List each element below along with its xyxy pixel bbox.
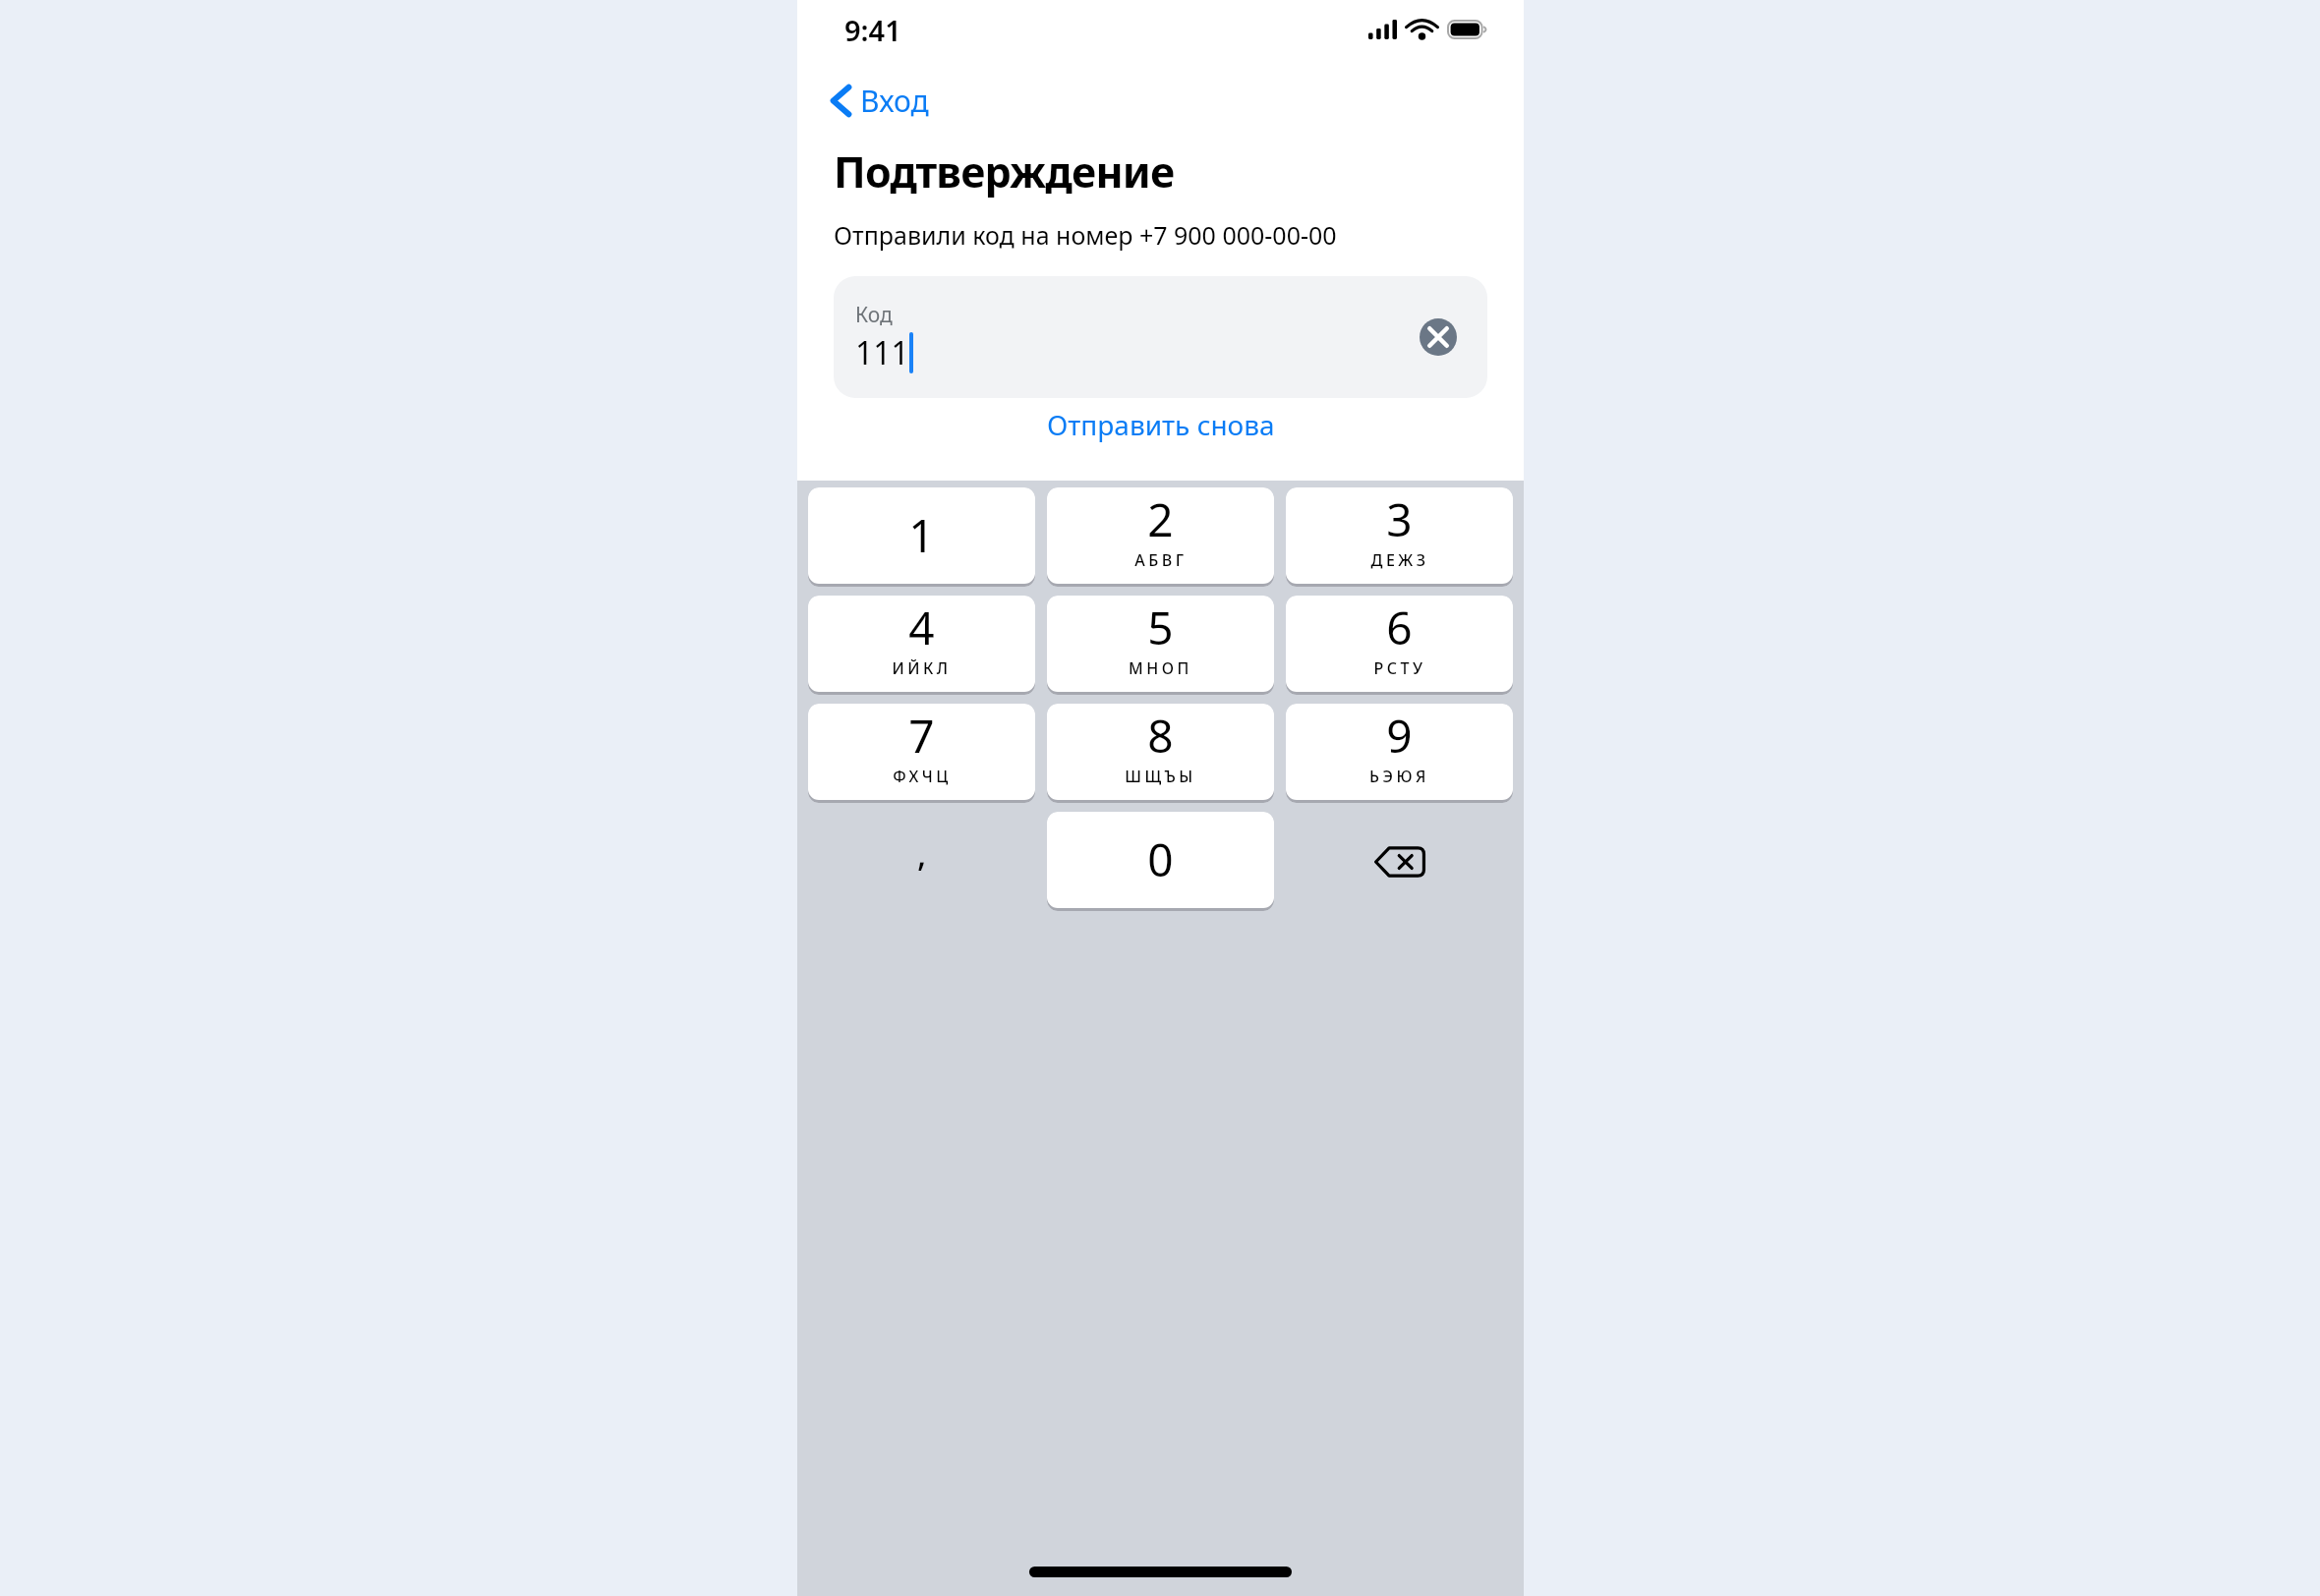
button[interactable]: Вход (823, 75, 943, 127)
staticText: МНОП (1129, 657, 1192, 679)
staticText: РСТУ (1373, 657, 1426, 679)
button[interactable]: Удалить (1286, 812, 1513, 911)
staticText: ФХЧЦ (893, 766, 952, 787)
staticText: 111 (855, 331, 909, 374)
button[interactable]: 1 (808, 487, 1035, 587)
staticText: 9 (1386, 705, 1413, 767)
staticText: 6 (1386, 597, 1413, 658)
staticText: ДЕЖЗ (1370, 549, 1429, 571)
staticText: , (917, 831, 927, 877)
staticText: 2 (1147, 488, 1174, 550)
button[interactable]: 8 (1047, 704, 1274, 803)
button[interactable]: 9 (1286, 704, 1513, 803)
button[interactable]: 2 (1047, 487, 1274, 587)
staticText: ЬЭЮЯ (1369, 766, 1429, 787)
staticText: 7 (908, 705, 935, 767)
staticText: 5 (1147, 597, 1174, 658)
button[interactable]: 3 (1286, 487, 1513, 587)
staticText: ШЩЪЫ (1125, 766, 1196, 787)
button[interactable]: 4 (808, 596, 1035, 695)
button[interactable]: 7 (808, 704, 1035, 803)
button[interactable]: Очистить (1413, 312, 1464, 363)
staticText: Отправили код на номер +7 900 000-00-00 (834, 218, 1337, 252)
staticText: Отправить снова (1047, 406, 1275, 443)
button[interactable]: 6 (1286, 596, 1513, 695)
staticText: Подтверждение (834, 142, 1175, 200)
staticText: АБВГ (1134, 549, 1188, 571)
button[interactable]: Запятая (808, 812, 1035, 911)
staticText: 8 (1147, 705, 1174, 767)
button[interactable]: 5 (1047, 596, 1274, 695)
staticText: 4 (908, 597, 935, 658)
staticText: 0 (1147, 828, 1174, 890)
button[interactable]: Отправить снова (1033, 398, 1289, 451)
staticText: 1 (908, 504, 935, 566)
staticText: ИЙКЛ (892, 657, 952, 679)
button[interactable]: Код (834, 276, 1487, 398)
staticText: Код (855, 301, 893, 329)
button[interactable]: 0 (1047, 812, 1274, 911)
staticText: Вход (860, 81, 929, 121)
staticText: 3 (1386, 488, 1413, 550)
staticText: 9:41 (844, 11, 901, 49)
